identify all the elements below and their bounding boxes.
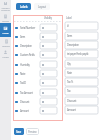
button[interactable]: Visibility for Tax Amount xyxy=(40,89,57,96)
button[interactable]: Tax Amount xyxy=(14,88,40,97)
staticText: Serial Number xyxy=(20,26,36,30)
staticText: Custom Fields xyxy=(20,53,35,57)
button[interactable]: TaxID xyxy=(14,78,40,87)
button[interactable]: Tax xyxy=(65,87,98,95)
staticText: Solution Products xyxy=(1,6,10,12)
staticText: Note xyxy=(20,72,26,76)
button[interactable]: Item xyxy=(14,32,40,41)
button[interactable]: Description xyxy=(14,41,40,50)
button[interactable]: Serial Number xyxy=(14,23,40,32)
button[interactable]: Preview xyxy=(26,128,39,135)
button[interactable]: Visibility for Discount xyxy=(40,98,57,105)
staticText: Qty xyxy=(67,62,71,66)
staticText: Labels xyxy=(20,5,28,9)
button[interactable]: Humidity xyxy=(14,60,40,69)
staticText: Reports xyxy=(2,44,10,47)
button[interactable]: Amount xyxy=(65,106,98,114)
button[interactable]: tei payer Hsnk paytb xyxy=(65,50,98,58)
staticText: Rate xyxy=(67,71,72,75)
button[interactable]: Reports xyxy=(0,37,11,48)
staticText: Save xyxy=(16,130,22,134)
button[interactable]: Description xyxy=(65,41,98,49)
button[interactable]: Discount xyxy=(14,97,40,106)
button[interactable]: Profile xyxy=(0,48,11,59)
button[interactable]: # xyxy=(65,22,98,30)
button[interactable]: Note xyxy=(14,69,40,78)
staticText: Amount xyxy=(67,108,76,112)
button[interactable]: Visibility for Note xyxy=(40,70,57,77)
staticText: Amount xyxy=(20,109,29,113)
button[interactable]: Visibility for Amount xyxy=(40,107,57,114)
staticText: Item xyxy=(67,34,72,38)
staticText: Item xyxy=(20,35,25,39)
staticText: Labels xyxy=(2,31,9,34)
staticText: Preview xyxy=(28,130,37,134)
button[interactable]: Save xyxy=(14,128,24,135)
staticText: Tax xyxy=(67,89,71,93)
button[interactable]: Visibility for TaxID xyxy=(40,79,57,86)
staticText: Discount xyxy=(20,100,30,104)
staticText: Profile xyxy=(2,55,9,58)
button[interactable]: Custom Fields xyxy=(14,50,40,59)
button[interactable]: Visibility for Serial Number xyxy=(40,24,57,31)
staticText: # xyxy=(67,24,69,28)
button[interactable]: Tax % xyxy=(65,78,98,86)
staticText: Humidity xyxy=(20,63,30,67)
staticText: tei payer Hsnk paytb xyxy=(67,52,89,56)
button[interactable]: Qty xyxy=(65,60,98,68)
staticText: Discount xyxy=(67,99,77,103)
staticText: Tax Amount xyxy=(20,91,33,95)
button[interactable]: Master xyxy=(0,12,11,23)
button[interactable]: Solution Products xyxy=(0,0,11,12)
button[interactable]: Rate xyxy=(65,69,98,77)
staticText: Description xyxy=(20,44,32,48)
staticText: Description xyxy=(67,43,79,47)
button[interactable]: Visibility for Item xyxy=(40,33,57,40)
button[interactable]: Item xyxy=(65,32,98,40)
button[interactable]: Labels xyxy=(0,23,11,37)
button[interactable]: Visibility for Humidity xyxy=(40,61,57,68)
button[interactable]: Labels xyxy=(16,3,31,10)
button[interactable]: Discount xyxy=(65,97,98,105)
staticText: TaxID xyxy=(20,81,26,85)
button[interactable]: Layout xyxy=(34,3,50,10)
button[interactable]: Amount xyxy=(14,106,40,115)
button[interactable]: Visibility for Custom Fields xyxy=(40,51,57,58)
staticText: Tax % xyxy=(67,80,73,84)
staticText: Master xyxy=(2,19,9,22)
staticText: Visibility xyxy=(44,16,52,20)
button[interactable]: Visibility for Description xyxy=(40,42,57,49)
staticText: Layout xyxy=(38,5,46,9)
staticText: Label xyxy=(66,16,72,20)
